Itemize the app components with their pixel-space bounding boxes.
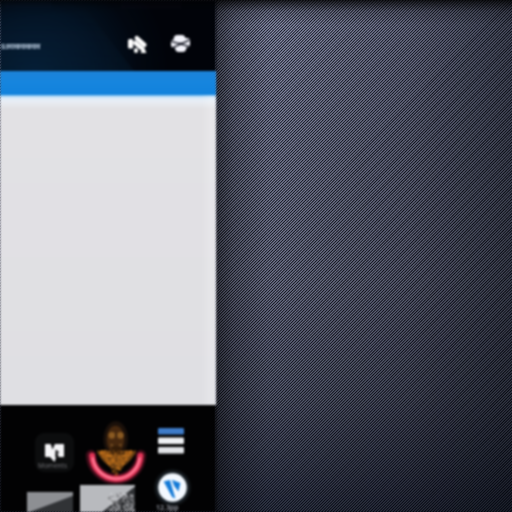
button[interactable]: Apps (124, 30, 152, 58)
button[interactable] (80, 485, 135, 512)
button[interactable] (35, 433, 74, 472)
button[interactable] (0, 71, 216, 95)
button[interactable]: App logo (154, 469, 191, 506)
staticText: S:ĦĦĦĦĦĦ (1, 41, 41, 51)
button[interactable]: Mail (166, 29, 195, 58)
staticText: 12.3pp (156, 503, 179, 512)
staticText: Moments (38, 461, 68, 470)
button[interactable] (27, 492, 73, 512)
button[interactable] (158, 428, 184, 460)
